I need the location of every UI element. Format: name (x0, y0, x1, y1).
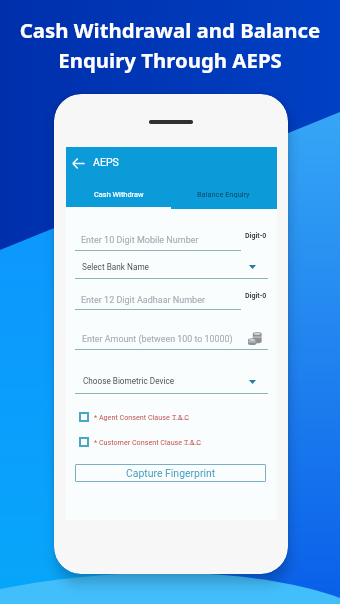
staticText: Enter 12 Digit Aadhaar Number (81, 295, 205, 306)
staticText: Choose Biometric Device (83, 376, 175, 386)
staticText: Select Bank Name (82, 262, 149, 272)
staticText: Cash Withdraw (94, 190, 144, 199)
button[interactable]: Back (72, 157, 85, 170)
staticText: Enter 10 Digit Mobile Number (81, 235, 199, 246)
staticText: Enter Amount (between 100 to 10000) (82, 334, 233, 344)
button[interactable]: Cash Withdraw (66, 183, 171, 205)
staticText: Balance Enquiry (197, 190, 250, 199)
staticText: Cash Withdrawal and Balance (0, 16, 340, 44)
staticText: Digit-0 (245, 232, 267, 240)
staticText: AEPS (93, 156, 119, 168)
staticText: T & C (184, 438, 201, 446)
staticText: T & C (172, 413, 189, 421)
button[interactable]: * Agent Consent Clause (79, 412, 189, 422)
staticText: * Agent Consent Clause (94, 413, 172, 421)
button[interactable]: Balance Enquiry (171, 183, 276, 205)
staticText: Enquiry Through AEPS (0, 46, 340, 74)
button[interactable]: Capture Fingerprint (75, 464, 266, 482)
staticText: Capture Fingerprint (126, 467, 216, 479)
button[interactable]: * Customer Consent Clause (79, 437, 201, 447)
staticText: * Customer Consent Clause (94, 438, 184, 446)
staticText: Digit-0 (245, 292, 267, 300)
